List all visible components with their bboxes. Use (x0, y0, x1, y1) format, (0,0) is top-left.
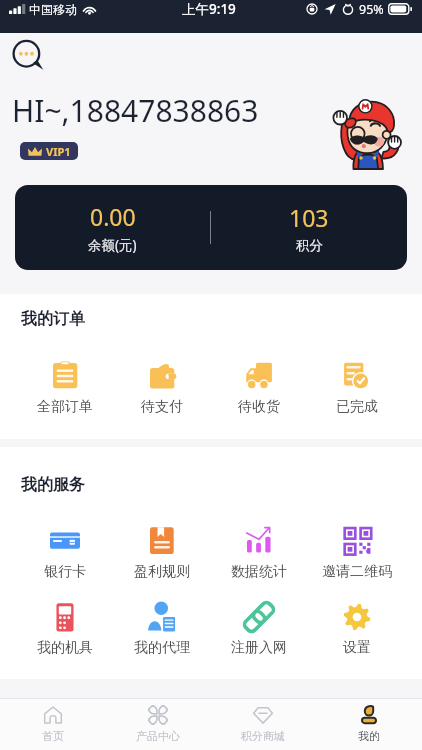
button[interactable]: 我的代理 (113, 602, 210, 657)
staticText: HI~,18847838863 (12, 90, 259, 131)
staticText: 首页 (42, 729, 64, 743)
staticText: VIP1 (46, 144, 71, 159)
button[interactable]: 积分商城 (210, 699, 316, 750)
staticText: 已完成 (336, 398, 378, 416)
staticText: 待支付 (141, 398, 183, 416)
staticText: 待收货 (238, 398, 280, 416)
button[interactable]: 全部订单 (16, 361, 113, 416)
staticText: 上午9:19 (182, 0, 236, 18)
button[interactable]: 设置 (308, 602, 406, 657)
staticText: 余额(元) (88, 236, 137, 254)
button[interactable]: 我的 (316, 699, 422, 750)
staticText: 盈利规则 (134, 563, 190, 581)
button[interactable]: 产品中心 (105, 699, 210, 750)
button[interactable]: 盈利规则 (113, 526, 210, 581)
button[interactable]: Avatar (327, 93, 407, 169)
button[interactable]: 银行卡 (16, 526, 113, 581)
staticText: 我的机具 (37, 639, 93, 657)
staticText: 我的订单 (21, 309, 85, 329)
staticText: 注册入网 (231, 639, 287, 657)
staticText: 中国移动 (29, 2, 77, 17)
staticText: 积分 (296, 237, 323, 254)
staticText: 数据统计 (231, 563, 287, 581)
staticText: 积分商城 (241, 729, 285, 743)
button[interactable]: 邀请二维码 (308, 526, 406, 581)
staticText: 产品中心 (136, 729, 180, 743)
button[interactable]: Messages (12, 40, 44, 72)
button[interactable]: 首页 (0, 699, 105, 750)
staticText: 全部订单 (37, 398, 93, 416)
button[interactable]: 0.00 (15, 201, 210, 254)
staticText: 0.00 (90, 201, 136, 232)
staticText: 我的代理 (134, 639, 190, 657)
staticText: 邀请二维码 (322, 563, 392, 581)
staticText: 95% (359, 1, 384, 18)
button[interactable]: 我的机具 (16, 602, 113, 657)
button[interactable]: 103 (211, 202, 407, 254)
button[interactable]: 待支付 (113, 361, 210, 416)
staticText: 我的 (358, 729, 380, 743)
staticText: 设置 (343, 639, 371, 657)
button[interactable]: VIP1 (20, 142, 78, 160)
staticText: 银行卡 (44, 563, 86, 581)
button[interactable]: 数据统计 (210, 526, 308, 581)
button[interactable]: 已完成 (308, 361, 406, 416)
staticText: 103 (289, 202, 329, 233)
button[interactable]: 注册入网 (210, 602, 308, 657)
button[interactable]: 待收货 (210, 361, 308, 416)
staticText: 我的服务 (21, 475, 85, 495)
